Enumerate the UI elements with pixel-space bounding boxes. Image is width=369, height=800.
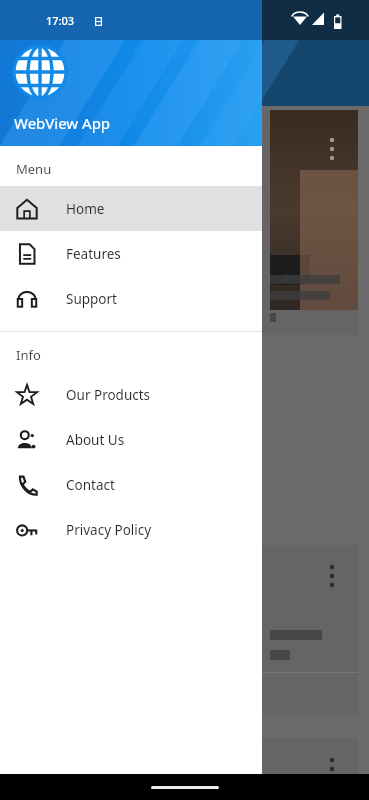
- other: App logo: [14, 46, 66, 98]
- staticText: Contact: [66, 476, 115, 494]
- button[interactable]: About Us: [0, 417, 262, 462]
- button[interactable]: App logo: [0, 0, 262, 146]
- staticText: Home: [66, 200, 105, 218]
- staticText: 17:03: [46, 13, 75, 28]
- button[interactable]: Support: [0, 276, 262, 321]
- staticText: Features: [66, 245, 121, 263]
- staticText: Privacy Policy: [66, 521, 152, 539]
- staticText: Support: [66, 290, 117, 308]
- staticText: Our Products: [66, 386, 151, 404]
- button[interactable]: Features: [0, 231, 262, 276]
- staticText: About Us: [66, 431, 125, 449]
- staticText: WebView App: [14, 113, 111, 133]
- button[interactable]: Contact: [0, 462, 262, 507]
- button[interactable]: Our Products: [0, 372, 262, 417]
- button[interactable]: Privacy Policy: [0, 507, 262, 552]
- staticText: Info: [16, 346, 41, 364]
- staticText: Menu: [16, 160, 52, 178]
- button[interactable]: Home: [0, 186, 262, 231]
